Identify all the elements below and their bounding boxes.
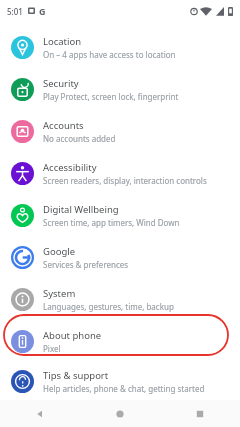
button[interactable]: Tips & support: [0, 362, 240, 400]
button[interactable]: Accessibility: [0, 152, 240, 194]
button[interactable]: Home: [80, 400, 160, 427]
button[interactable]: About phone: [0, 320, 240, 362]
staticText: Screen time, app timers, Wind Down: [43, 217, 180, 228]
button[interactable]: Security: [0, 68, 240, 110]
button[interactable]: Recent apps: [160, 400, 240, 427]
button[interactable]: Back: [0, 400, 80, 427]
staticText: Digital Wellbeing: [43, 203, 119, 216]
staticText: Accessibility: [43, 161, 97, 174]
button[interactable]: Digital Wellbeing: [0, 194, 240, 236]
staticText: About phone: [43, 329, 102, 342]
button[interactable]: System: [0, 278, 240, 320]
staticText: Services & preferences: [43, 259, 129, 270]
staticText: System: [43, 287, 76, 300]
staticText: Accounts: [43, 119, 84, 132]
staticText: Google: [43, 245, 76, 258]
staticText: Screen readers, display, interaction con…: [43, 175, 207, 186]
button[interactable]: Google: [0, 236, 240, 278]
staticText: Help articles, phone & chat, getting sta…: [43, 383, 205, 394]
staticText: Security: [43, 77, 79, 90]
button[interactable]: Accounts: [0, 110, 240, 152]
staticText: Play Protect, screen lock, fingerprint: [43, 91, 179, 102]
staticText: On – 4 apps have access to location: [43, 49, 176, 60]
button[interactable]: Location: [0, 26, 240, 68]
staticText: G: [39, 5, 46, 17]
staticText: Pixel: [43, 343, 61, 354]
staticText: No accounts added: [43, 133, 116, 144]
staticText: Tips & support: [43, 369, 109, 382]
staticText: Location: [43, 35, 82, 48]
staticText: 5:01: [7, 6, 23, 17]
staticText: Languages, gestures, time, backup: [43, 301, 174, 312]
